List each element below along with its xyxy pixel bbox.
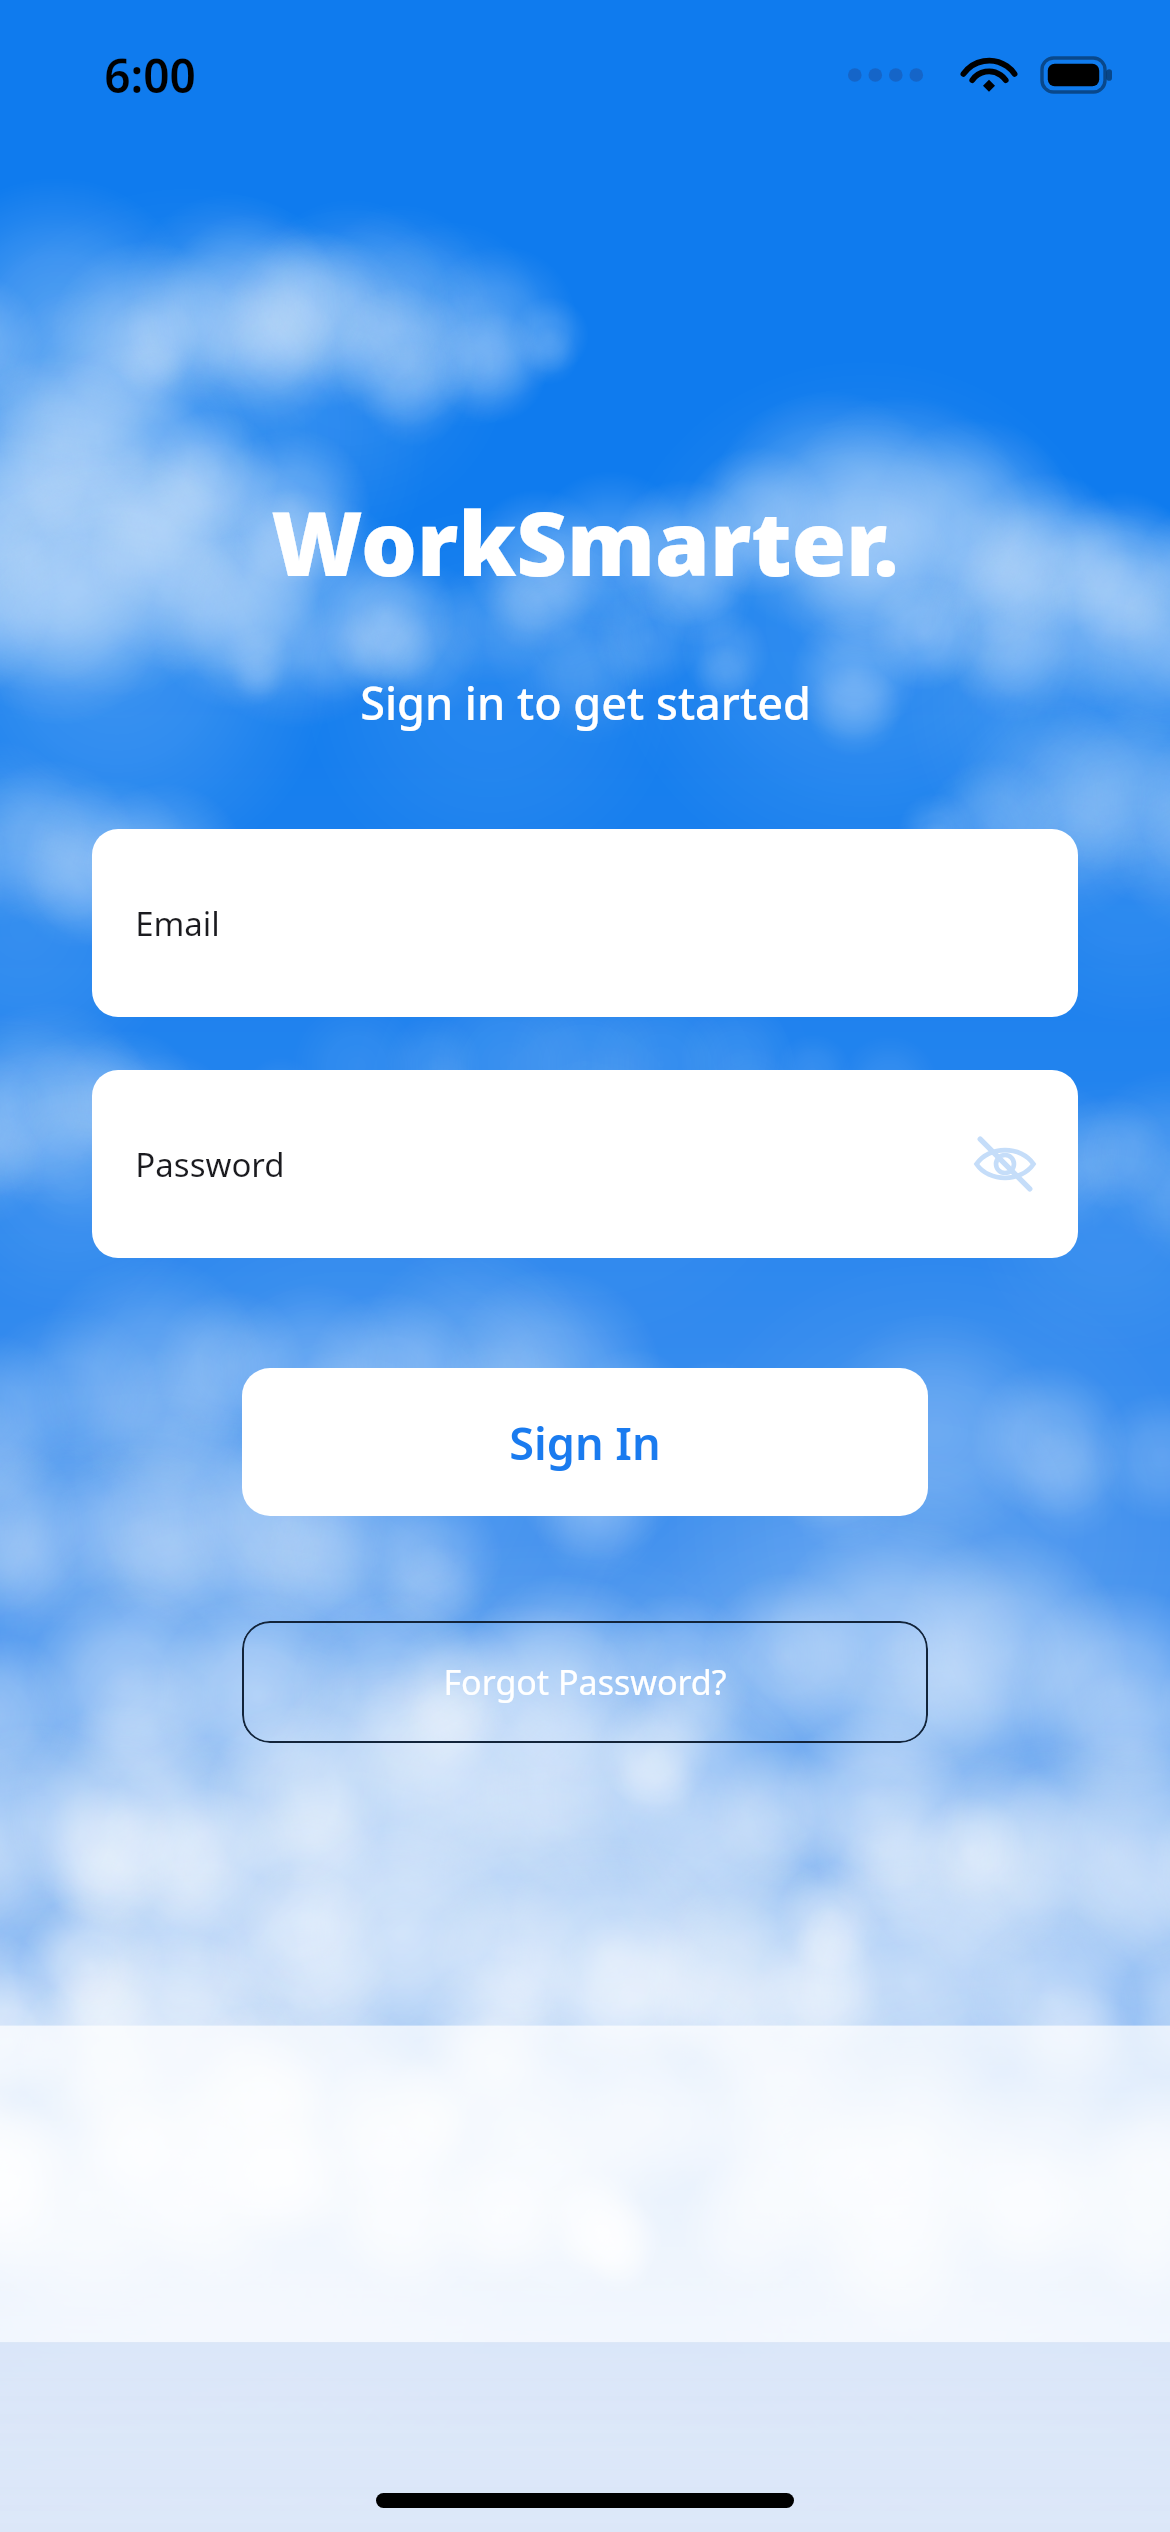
staticText: 6:00 — [104, 44, 196, 107]
button[interactable]: Email — [92, 829, 1078, 1017]
staticText: Sign in to get started — [360, 672, 811, 733]
staticText: Password — [135, 1142, 285, 1187]
button[interactable]: Forgot Password? — [242, 1621, 928, 1743]
button[interactable]: Password — [92, 1070, 1078, 1258]
staticText: Email — [135, 901, 220, 946]
staticText: Sign In — [509, 1412, 661, 1473]
staticText: WorkSmarter. — [271, 482, 899, 602]
button[interactable]: Sign In — [242, 1368, 928, 1516]
button[interactable]: Show password — [974, 1133, 1036, 1195]
staticText: Forgot Password? — [443, 1659, 727, 1705]
